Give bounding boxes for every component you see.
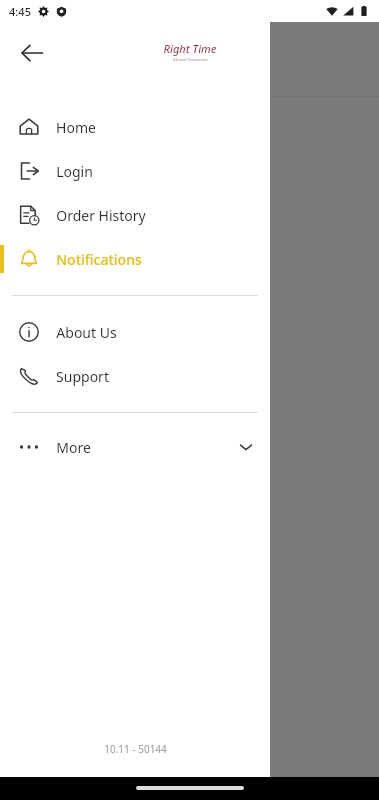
staticText: More [56,438,91,457]
staticText: Home [56,118,96,137]
button[interactable]: Order History [0,193,270,237]
staticText: 10.11 - 50144 [104,742,167,756]
button[interactable]: Home [0,105,270,149]
button[interactable]: About Us [0,310,270,354]
staticText: 4:45 [9,4,31,19]
staticText: Support [56,367,109,386]
staticText: About Us [56,323,117,342]
staticText: Order History [56,206,146,225]
staticText: African Restaurant [173,57,208,62]
button[interactable]: Back [8,29,56,77]
staticText: Login [56,162,93,181]
button[interactable]: Login [0,149,270,193]
button[interactable]: More [0,425,270,469]
button[interactable]: Notifications [0,237,270,281]
staticText: Notifications [56,250,142,269]
staticText: Right Time [163,41,217,56]
button[interactable]: Support [0,354,270,398]
